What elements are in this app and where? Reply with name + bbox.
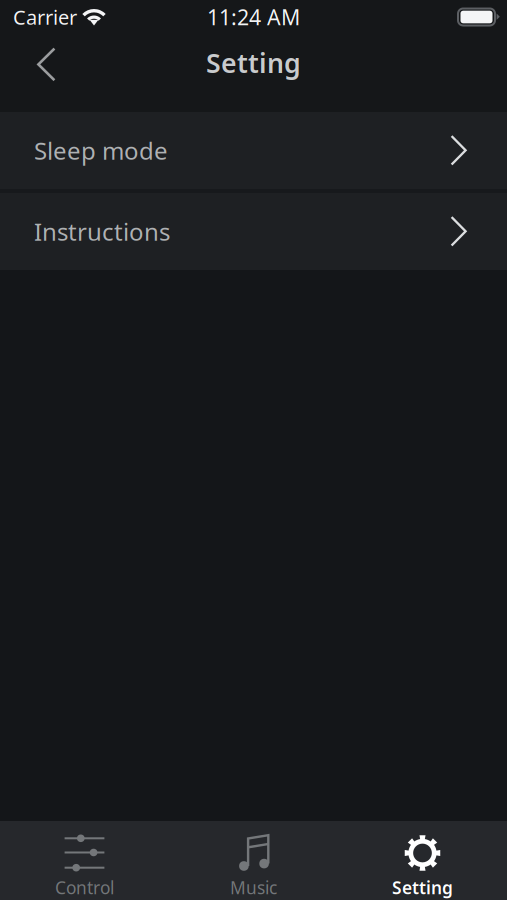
button[interactable]: Music xyxy=(169,821,338,900)
staticText: Setting xyxy=(392,876,453,899)
button[interactable]: Back xyxy=(0,34,93,112)
staticText: 11:24 AM xyxy=(207,3,300,31)
staticText: Sleep mode xyxy=(34,135,168,166)
staticText: Music xyxy=(230,876,277,899)
staticText: Control xyxy=(55,876,114,899)
button[interactable]: Sleep mode xyxy=(0,112,507,189)
button[interactable]: Instructions xyxy=(0,193,507,270)
staticText: Setting xyxy=(206,45,301,80)
staticText: Carrier xyxy=(13,4,77,30)
button[interactable]: Control xyxy=(0,821,169,900)
staticText: Instructions xyxy=(34,216,170,247)
button[interactable]: Setting xyxy=(338,821,507,900)
